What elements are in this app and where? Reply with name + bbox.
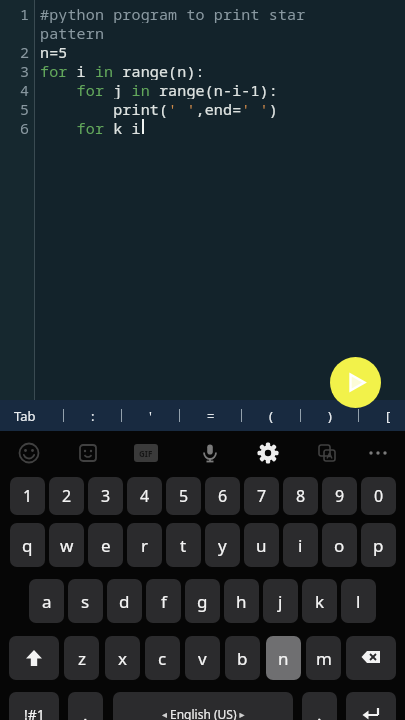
button[interactable]: f [146, 579, 181, 623]
button[interactable]: x [105, 636, 140, 680]
button[interactable]: g [185, 579, 220, 623]
button[interactable]: . [302, 692, 337, 720]
button[interactable]: GIF [129, 436, 163, 470]
staticText: , [83, 703, 88, 720]
button[interactable]: u [244, 523, 279, 567]
button[interactable] [193, 436, 227, 470]
button[interactable]: 4 [127, 477, 162, 515]
staticText: 4 [140, 485, 150, 507]
button[interactable]: n [266, 636, 301, 680]
button[interactable] [330, 357, 381, 408]
staticText: q [22, 534, 33, 557]
staticText: 7 [257, 485, 267, 507]
button[interactable]: 3 [88, 477, 123, 515]
staticText: d [119, 590, 130, 613]
staticText: r [141, 534, 149, 557]
button[interactable]: c [145, 636, 180, 680]
button[interactable]: o [322, 523, 357, 567]
staticText: m [316, 647, 332, 670]
staticText: c [158, 647, 167, 670]
staticText: b [237, 647, 248, 670]
staticText: w [60, 534, 74, 557]
button[interactable] [9, 636, 59, 680]
button[interactable]: t [166, 523, 201, 567]
button[interactable]: k [302, 579, 337, 623]
button[interactable]: , [68, 692, 103, 720]
button[interactable]: i [283, 523, 318, 567]
staticText: n [278, 647, 289, 670]
button[interactable]: j [263, 579, 298, 623]
staticText: 3 [101, 485, 111, 507]
staticText: 0 [374, 485, 384, 507]
button[interactable]: ' [145, 407, 156, 425]
button[interactable]: v [185, 636, 220, 680]
staticText: for k i [40, 118, 141, 137]
button[interactable]: 1 [10, 477, 45, 515]
staticText: z [78, 647, 86, 670]
button[interactable]: r [127, 523, 162, 567]
staticText: #python program to print star [40, 4, 306, 23]
button[interactable] [12, 436, 46, 470]
button[interactable]: !#1 [9, 692, 59, 720]
staticText: 9 [335, 485, 345, 507]
button[interactable]: s [68, 579, 103, 623]
button[interactable]: e [88, 523, 123, 567]
staticText: 6 [20, 118, 30, 137]
staticText: 1 [23, 485, 33, 507]
staticText: 6 [218, 485, 228, 507]
button[interactable]: 2 [49, 477, 84, 515]
button[interactable]: 8 [283, 477, 318, 515]
button[interactable]: l [341, 579, 376, 623]
button[interactable]: ◂ [113, 692, 293, 720]
staticText: h [236, 590, 247, 613]
button[interactable]: q [10, 523, 45, 567]
staticText: GIF [139, 448, 153, 459]
button[interactable] [71, 436, 105, 470]
staticText: g [197, 590, 208, 613]
staticText: 3 [20, 61, 30, 80]
staticText: : [91, 407, 95, 425]
staticText: = [207, 407, 215, 425]
button[interactable]: a [29, 579, 64, 623]
button[interactable] [361, 436, 395, 470]
button[interactable]: ( [265, 407, 277, 425]
button[interactable]: : [87, 407, 99, 425]
button[interactable]: Tab [10, 407, 40, 425]
staticText: pattern [40, 23, 105, 42]
button[interactable]: p [361, 523, 396, 567]
button[interactable]: b [225, 636, 260, 680]
button[interactable] [310, 436, 344, 470]
button[interactable]: 6 [205, 477, 240, 515]
button[interactable]: 5 [166, 477, 201, 515]
staticText: o [334, 534, 345, 557]
button[interactable] [346, 636, 396, 680]
staticText: j [278, 590, 283, 613]
staticText: s [81, 590, 90, 613]
button[interactable]: d [107, 579, 142, 623]
button[interactable] [251, 436, 285, 470]
staticText: ◂ [162, 707, 170, 720]
staticText: [ [386, 407, 391, 425]
button[interactable]: w [49, 523, 84, 567]
button[interactable]: ) [324, 407, 336, 425]
button[interactable] [346, 692, 396, 720]
button[interactable]: 7 [244, 477, 279, 515]
staticText: n=5 [40, 42, 68, 61]
staticText: 8 [296, 485, 306, 507]
staticText: 4 [20, 80, 30, 99]
button[interactable]: z [64, 636, 99, 680]
staticText: ) [328, 407, 332, 425]
button[interactable]: 9 [322, 477, 357, 515]
staticText: e [101, 534, 111, 557]
staticText: Tab [14, 407, 36, 425]
staticText: . [317, 703, 322, 720]
button[interactable]: 0 [361, 477, 396, 515]
button[interactable]: h [224, 579, 259, 623]
staticText: i [298, 534, 303, 557]
button[interactable]: y [205, 523, 240, 567]
button[interactable]: [ [382, 407, 395, 425]
staticText: t [180, 534, 187, 557]
button[interactable]: = [203, 407, 219, 425]
button[interactable]: m [306, 636, 341, 680]
staticText: print(' ',end=' ') [40, 99, 278, 118]
